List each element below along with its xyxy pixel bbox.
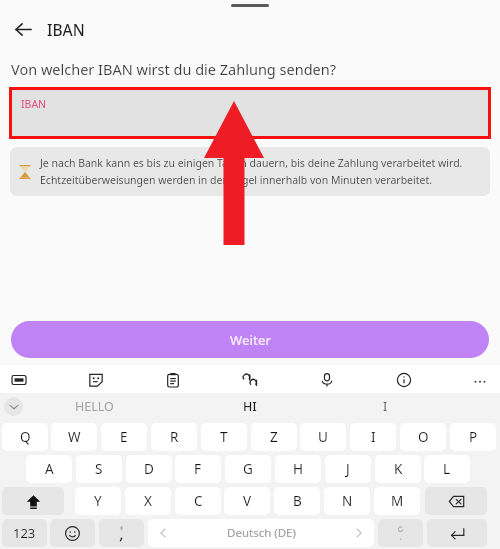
button[interactable]: V (224, 487, 270, 515)
button[interactable]: N (324, 487, 370, 515)
button[interactable]: J (325, 455, 371, 483)
button[interactable]: Z (251, 423, 297, 451)
button[interactable]: Emoji (50, 519, 95, 547)
button[interactable]: Expand suggestions (4, 397, 23, 416)
staticText: Q (20, 428, 31, 446)
staticText: S (95, 460, 103, 478)
staticText: Weiter (230, 331, 271, 349)
button[interactable]: I (350, 423, 396, 451)
staticText: Z (270, 428, 278, 446)
button[interactable]: E (101, 423, 147, 451)
staticText: H (293, 460, 304, 478)
button[interactable]: M (374, 487, 420, 515)
staticText: T (220, 428, 228, 446)
button[interactable]: Y (75, 487, 121, 515)
button[interactable]: More options (467, 367, 493, 393)
button[interactable]: K (375, 455, 421, 483)
staticText: HI (243, 398, 257, 415)
button[interactable]: G (225, 455, 271, 483)
button[interactable]: 123 (2, 519, 47, 547)
staticText: IBAN (21, 97, 47, 111)
staticText: X (144, 492, 152, 510)
staticText: I (383, 398, 388, 415)
staticText: O (418, 428, 429, 446)
button[interactable]: D (126, 455, 172, 483)
button[interactable]: C (175, 487, 221, 515)
button[interactable]: I (365, 393, 405, 419)
button[interactable]: Stickers (83, 367, 109, 393)
button[interactable]: Back (10, 16, 36, 42)
button[interactable]: U (300, 423, 346, 451)
staticText: Echtzeitüberweisungen werden in der Rege… (40, 173, 433, 187)
button[interactable]: HELLO (62, 393, 126, 419)
staticText: M (391, 492, 404, 510)
button[interactable]: Translate (237, 367, 263, 393)
button[interactable]: B (274, 487, 320, 515)
button[interactable]: Voice input (314, 367, 340, 393)
staticText: C (194, 492, 203, 510)
staticText: Deutsch (DE) (227, 525, 296, 541)
staticText: D (144, 460, 154, 478)
staticText: E (120, 428, 128, 446)
button[interactable]: Period (378, 519, 423, 547)
button[interactable]: Info (391, 367, 417, 393)
staticText: Je nach Bank kann es bis zu einigen Tage… (40, 156, 463, 170)
staticText: B (293, 492, 302, 510)
button[interactable]: W (51, 423, 97, 451)
staticText: Y (94, 492, 102, 510)
button[interactable]: X (125, 487, 171, 515)
staticText: IBAN (47, 19, 85, 40)
staticText: V (243, 492, 252, 510)
staticText: L (443, 460, 451, 478)
staticText: U (318, 428, 328, 446)
staticText: Von welcher IBAN wirst du die Zahlung se… (11, 59, 336, 79)
button[interactable]: HI (220, 393, 280, 419)
button[interactable]: A (26, 455, 72, 483)
button[interactable]: S (76, 455, 122, 483)
button[interactable]: T (201, 423, 247, 451)
staticText: P (469, 428, 478, 446)
staticText: HELLO (75, 398, 114, 415)
staticText: G (243, 460, 253, 478)
staticText: F (194, 460, 202, 478)
button[interactable]: Q (2, 423, 48, 451)
button[interactable]: L (424, 455, 470, 483)
staticText: K (394, 460, 403, 478)
button[interactable]: Comma and voice (99, 519, 144, 547)
staticText: W (68, 428, 81, 446)
button[interactable]: F (175, 455, 221, 483)
staticText: A (45, 460, 54, 478)
button[interactable]: Deutsch (DE) (148, 519, 374, 547)
staticText: 123 (13, 524, 36, 542)
button[interactable]: P (450, 423, 496, 451)
staticText: J (346, 460, 350, 478)
button[interactable]: Enter (427, 519, 487, 547)
staticText: I (371, 428, 376, 446)
staticText: N (342, 492, 353, 510)
button[interactable]: GIF (6, 367, 32, 393)
button[interactable]: Backspace (425, 487, 487, 515)
button[interactable]: Weiter (11, 321, 489, 358)
button[interactable]: IBAN (12, 90, 488, 136)
button[interactable]: R (151, 423, 197, 451)
staticText: R (170, 428, 179, 446)
button[interactable]: Shift (2, 487, 64, 515)
button[interactable]: H (275, 455, 321, 483)
button[interactable]: O (400, 423, 446, 451)
button[interactable]: Clipboard (160, 367, 186, 393)
